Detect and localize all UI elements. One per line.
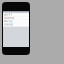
staticText: Focus bbox=[4, 20, 12, 23]
button[interactable]: Sleep bbox=[3, 23, 29, 26]
staticText: Wi-Fi bbox=[4, 13, 12, 16]
button[interactable]: Focus bbox=[3, 20, 29, 23]
staticText: Sound bbox=[4, 16, 14, 20]
button[interactable]: Sound bbox=[3, 16, 29, 20]
button[interactable]: Wi-Fi bbox=[3, 13, 29, 16]
staticText: Sleep bbox=[4, 23, 13, 26]
